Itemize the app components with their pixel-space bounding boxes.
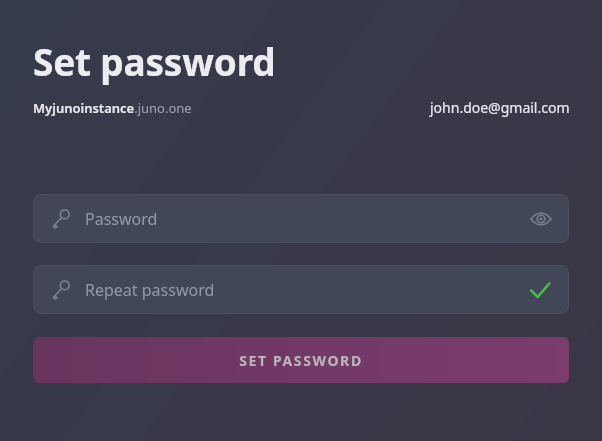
- button[interactable]: SET PASSWORD: [33, 337, 569, 383]
- staticText: SET PASSWORD: [239, 351, 363, 370]
- staticText: john.doe@gmail.com: [430, 98, 570, 117]
- button[interactable]: Password: [33, 194, 569, 243]
- other: Password: [51, 279, 72, 300]
- button[interactable]: Password: [33, 265, 569, 314]
- staticText: Repeat password: [85, 279, 528, 301]
- staticText: Myjunoinstance.juno.one: [33, 99, 192, 117]
- staticText: Set password: [33, 36, 276, 86]
- other: Password: [51, 208, 72, 229]
- other: Passwords match: [528, 278, 552, 302]
- staticText: Password: [85, 208, 530, 230]
- other: Show password: [530, 208, 552, 230]
